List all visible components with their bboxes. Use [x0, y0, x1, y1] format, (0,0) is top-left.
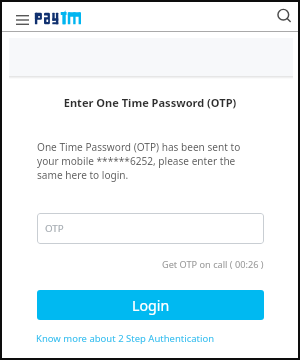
staticText: Login: [132, 296, 170, 315]
staticText: OTP: [45, 222, 64, 235]
button[interactable]: OTP: [37, 213, 264, 244]
button[interactable]: Get OTP on call ( 00:26 ): [162, 258, 264, 271]
staticText: One Time Password (OTP) has been sent to…: [37, 140, 243, 182]
button[interactable]: Know more about 2 Step Authentication: [36, 332, 215, 345]
button[interactable]: Menu: [6, 8, 30, 28]
button[interactable]: Login: [37, 290, 264, 320]
staticText: Know more about 2 Step Authentication: [36, 332, 215, 345]
button[interactable]: Search: [273, 5, 296, 28]
staticText: Enter One Time Password (OTP): [2, 95, 298, 110]
